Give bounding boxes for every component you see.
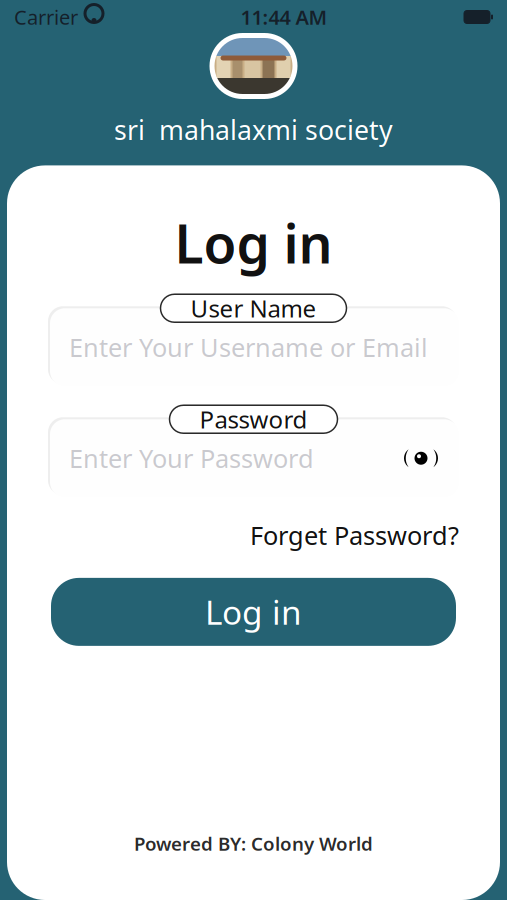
staticText: Enter Your Password xyxy=(69,441,314,475)
button[interactable]: Forget Password? xyxy=(250,514,459,556)
staticText: Powered BY: Colony World xyxy=(134,831,373,856)
staticText: Log in xyxy=(174,207,332,278)
staticText: Password xyxy=(199,403,307,435)
button[interactable]: Enter Your Password xyxy=(48,417,459,497)
staticText: User Name xyxy=(190,292,316,324)
staticText: 11:44 AM xyxy=(240,4,327,30)
staticText: Forget Password? xyxy=(250,518,459,552)
staticText: sri mahalaxmi society xyxy=(114,112,393,147)
button[interactable]: Enter Your Username or Email xyxy=(48,306,459,386)
staticText: Log in xyxy=(205,590,302,634)
staticText: Carrier xyxy=(14,4,78,30)
staticText: Enter Your Password xyxy=(67,439,312,473)
staticText: Enter Your Username or Email xyxy=(69,330,428,364)
staticText: Enter Your Username or Email xyxy=(67,328,426,362)
button[interactable]: Log in xyxy=(51,578,456,646)
